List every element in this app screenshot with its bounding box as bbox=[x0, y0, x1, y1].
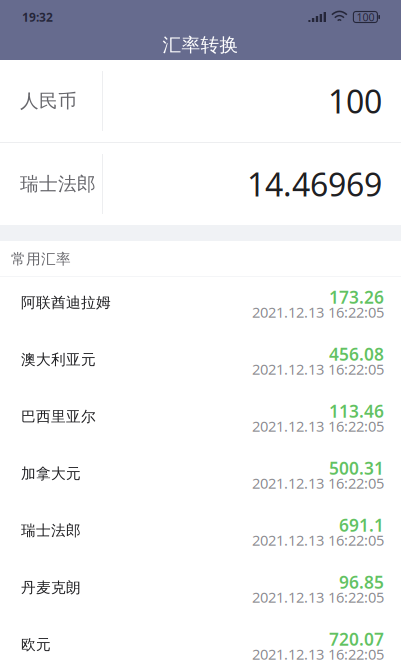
button[interactable]: 丹麦克朗 bbox=[0, 562, 401, 619]
button[interactable]: 瑞士法郎 bbox=[0, 143, 401, 225]
staticText: 2021.12.13 16:22:05 bbox=[252, 359, 384, 379]
button[interactable]: 瑞士法郎 bbox=[0, 505, 401, 562]
button[interactable]: 加拿大元 bbox=[0, 448, 401, 505]
staticText: 2021.12.13 16:22:05 bbox=[252, 416, 384, 436]
staticText: 100 bbox=[328, 80, 382, 122]
staticText: 人民币 bbox=[20, 89, 77, 112]
staticText: 加拿大元 bbox=[21, 464, 81, 482]
staticText: 2021.12.13 16:22:05 bbox=[252, 587, 384, 607]
staticText: 丹麦克朗 bbox=[21, 578, 81, 596]
button[interactable]: 欧元 bbox=[0, 619, 401, 661]
staticText: 100 bbox=[356, 10, 374, 24]
staticText: 2021.12.13 16:22:05 bbox=[252, 530, 384, 550]
staticText: 瑞士法郎 bbox=[21, 521, 81, 539]
staticText: 2021.12.13 16:22:05 bbox=[252, 302, 384, 322]
staticText: 173.26 bbox=[329, 285, 384, 308]
staticText: 19:32 bbox=[22, 9, 53, 25]
staticText: 456.08 bbox=[329, 342, 384, 365]
staticText: 720.07 bbox=[329, 627, 384, 650]
staticText: 113.46 bbox=[329, 399, 384, 422]
staticText: 汇率转换 bbox=[162, 33, 238, 56]
staticText: 常用汇率 bbox=[11, 250, 71, 268]
staticText: 2021.12.13 16:22:05 bbox=[252, 644, 384, 661]
button[interactable]: 阿联酋迪拉姆 bbox=[0, 277, 401, 334]
staticText: 500.31 bbox=[329, 456, 384, 479]
staticText: 瑞士法郎 bbox=[20, 172, 96, 195]
button[interactable]: 人民币 bbox=[0, 60, 401, 142]
staticText: 691.1 bbox=[339, 513, 384, 536]
staticText: 14.46969 bbox=[247, 163, 382, 205]
button[interactable]: 澳大利亚元 bbox=[0, 334, 401, 391]
staticText: 欧元 bbox=[21, 635, 51, 653]
button[interactable]: 巴西里亚尔 bbox=[0, 391, 401, 448]
staticText: 96.85 bbox=[339, 570, 384, 593]
staticText: 阿联酋迪拉姆 bbox=[21, 293, 111, 311]
staticText: 巴西里亚尔 bbox=[21, 407, 96, 425]
staticText: 2021.12.13 16:22:05 bbox=[252, 473, 384, 493]
staticText: 澳大利亚元 bbox=[21, 350, 96, 368]
